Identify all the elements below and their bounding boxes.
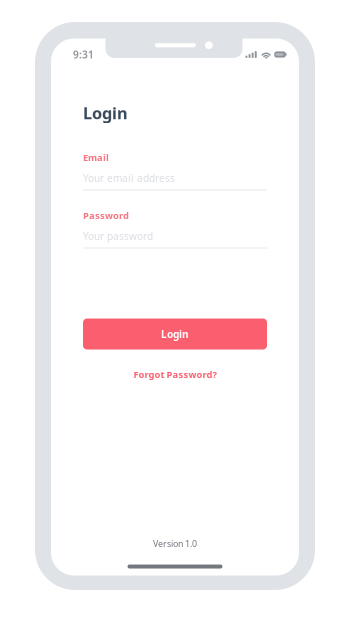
staticText: Forgot Password? <box>133 368 216 381</box>
staticText: Login <box>161 327 189 341</box>
staticText: Your email address <box>83 171 175 185</box>
button[interactable]: Forgot Password? <box>83 367 267 381</box>
staticText: Login <box>83 102 128 124</box>
staticText: Email <box>83 151 109 164</box>
staticText: 9:31 <box>73 48 94 61</box>
button[interactable]: Login <box>83 318 267 349</box>
staticText: Version 1.0 <box>153 537 197 549</box>
staticText: Password <box>83 209 129 222</box>
staticText: Your password <box>83 229 153 243</box>
